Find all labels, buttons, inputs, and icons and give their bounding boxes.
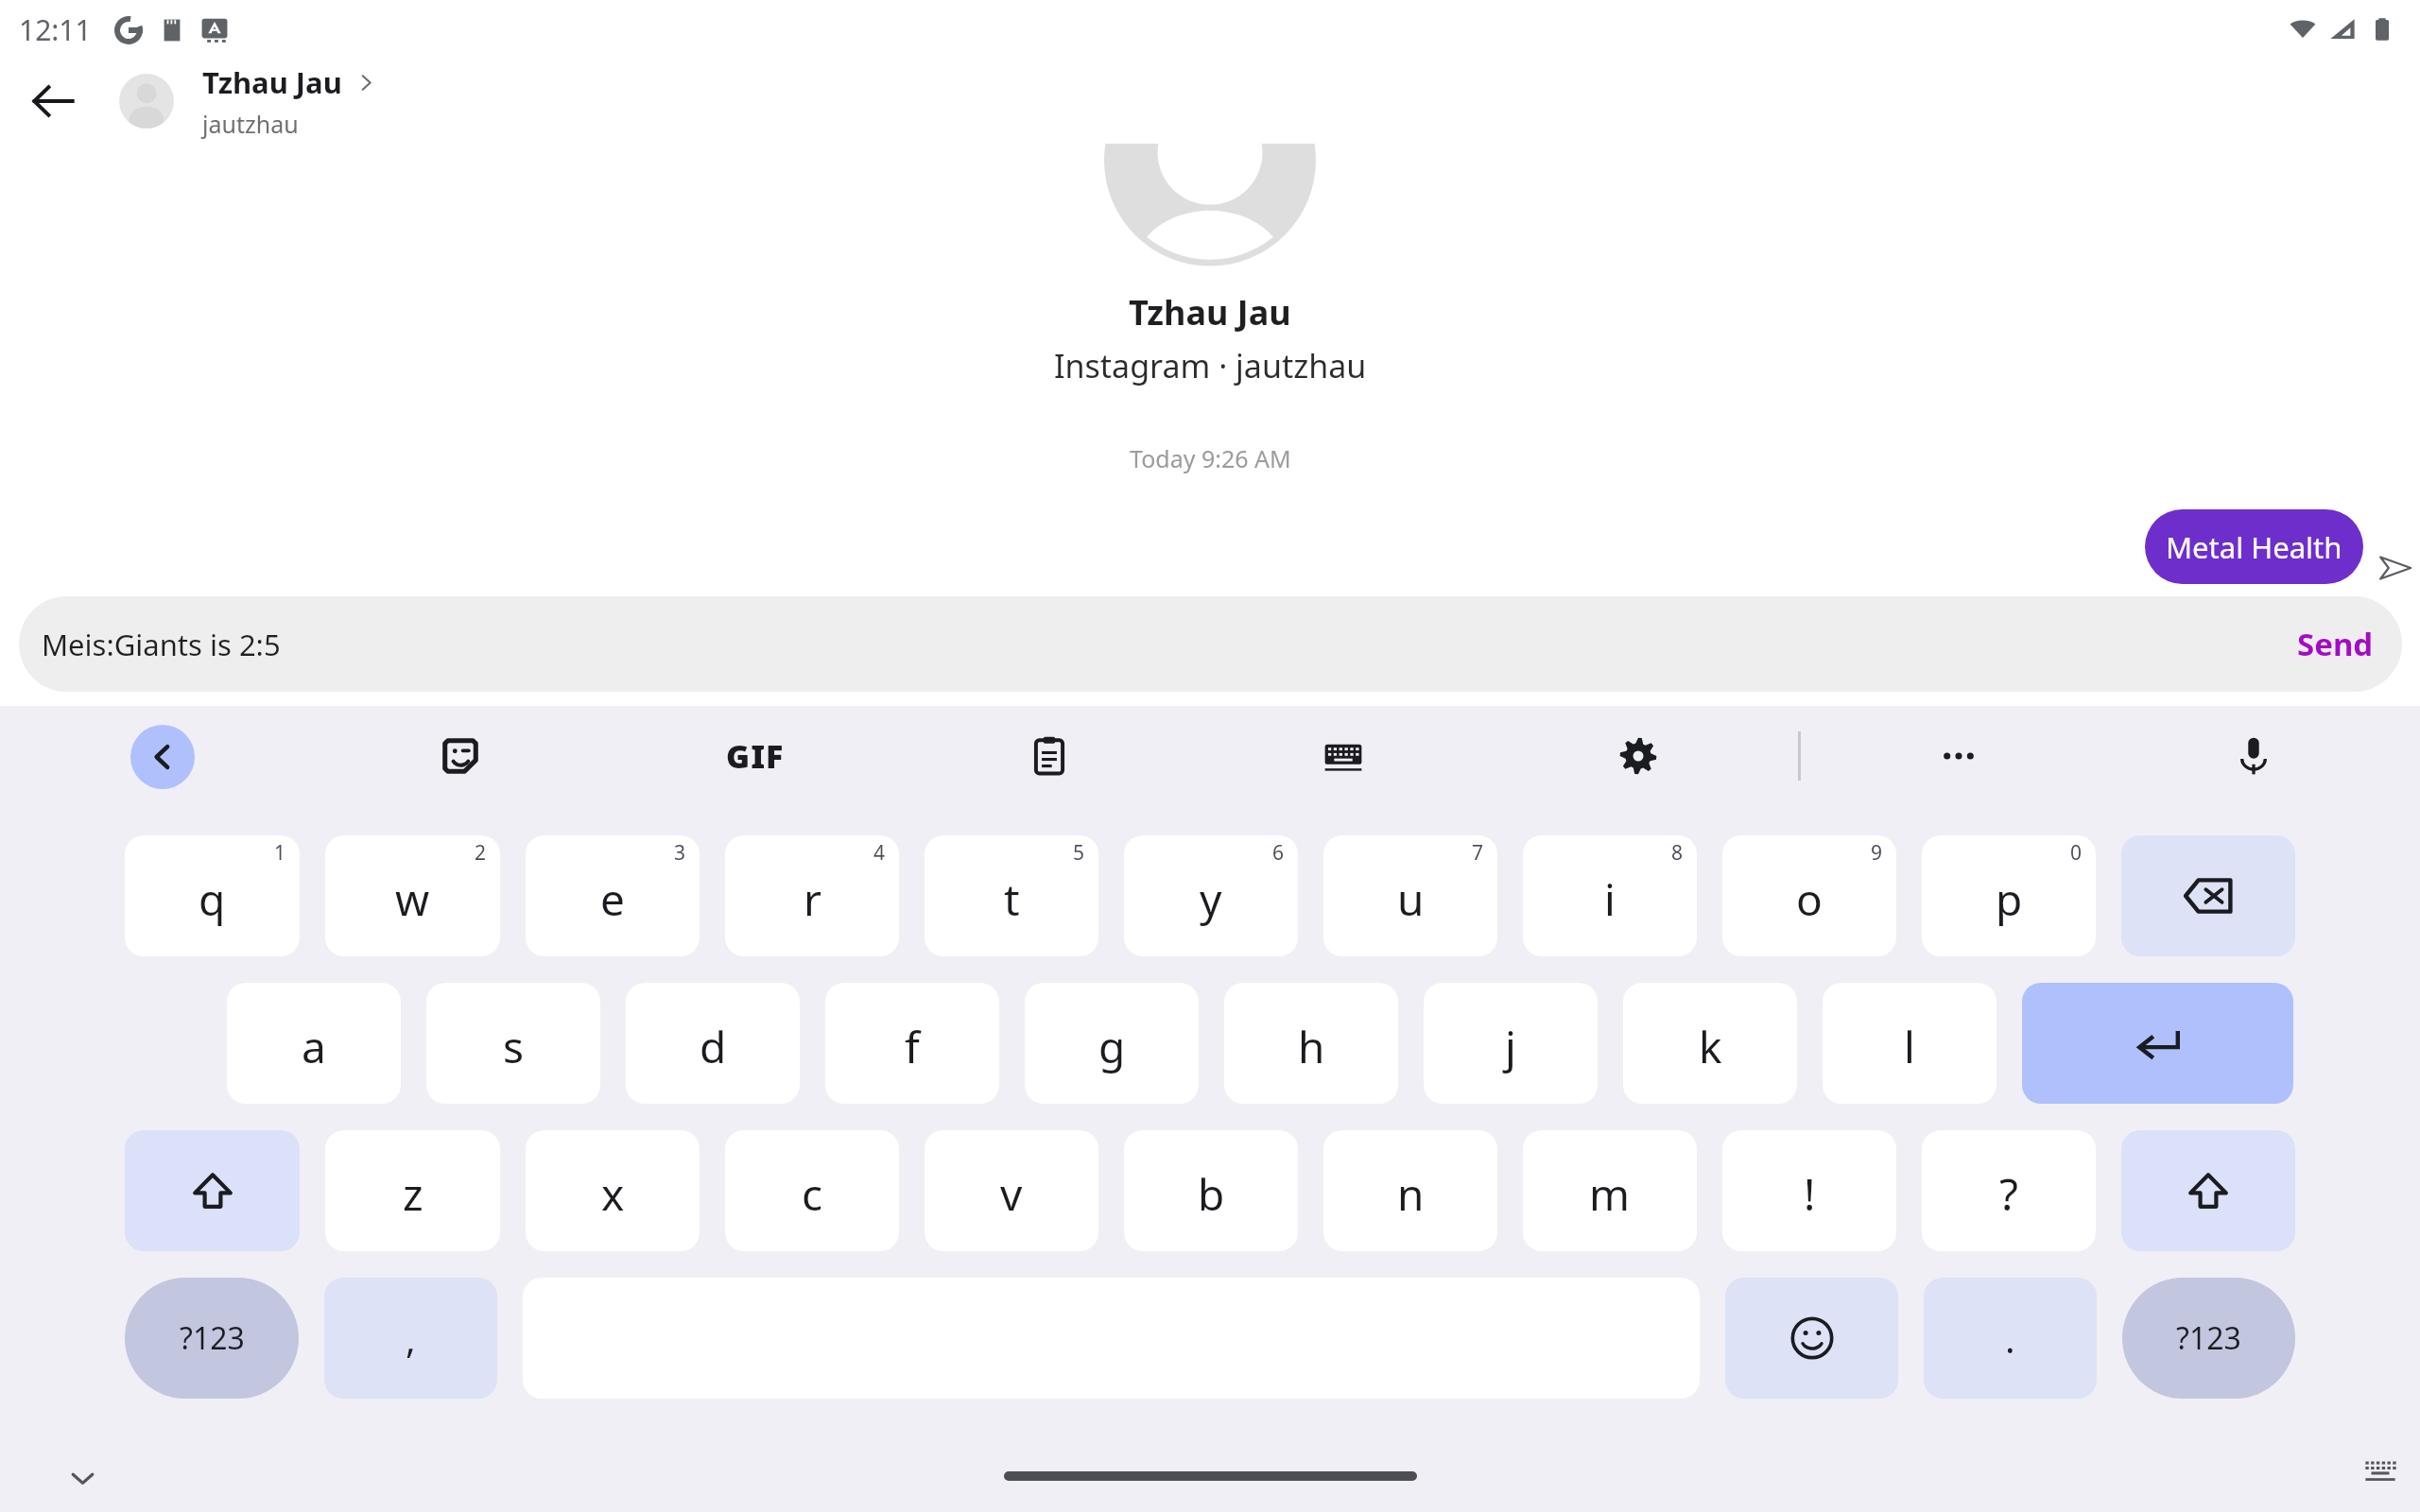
staticText: r [804, 869, 821, 929]
button[interactable]: Enter [2022, 983, 2293, 1104]
button[interactable]: ! [1722, 1130, 1896, 1251]
button[interactable]: Keyboard layout [1296, 709, 1391, 803]
staticText: Today 9:26 AM [1130, 442, 1291, 474]
staticText: 3 [674, 839, 686, 867]
button[interactable]: Voice input [2206, 709, 2301, 803]
button[interactable]: g [1025, 983, 1199, 1104]
button[interactable]: j [1424, 983, 1598, 1104]
staticText: k [1699, 1017, 1722, 1076]
staticText: Tzhau Jau [202, 62, 342, 102]
staticText: y [1200, 869, 1222, 929]
staticText: 4 [873, 839, 886, 867]
staticText: Instagram · jautzhau [1054, 344, 1367, 387]
button[interactable]: Switch keyboard [2350, 1438, 2411, 1499]
button[interactable]: t [925, 835, 1098, 956]
button[interactable]: , [324, 1278, 497, 1399]
staticText: 2 [475, 839, 487, 867]
staticText: j [1505, 1017, 1516, 1076]
staticText: Metal Health [2166, 527, 2342, 567]
staticText: 8 [1671, 839, 1684, 867]
staticText: a [302, 1017, 326, 1076]
staticText: t [1004, 869, 1020, 929]
staticText: o [1796, 869, 1823, 929]
button[interactable]: Hide keyboard [52, 1448, 112, 1508]
button[interactable]: ?123 [2122, 1278, 2295, 1399]
button[interactable]: Shift [125, 1130, 300, 1251]
staticText: 7 [1472, 839, 1484, 867]
staticText: n [1397, 1164, 1425, 1224]
staticText: p [1996, 869, 2023, 929]
staticText: ? [1999, 1164, 2018, 1224]
button[interactable]: d [626, 983, 800, 1104]
button[interactable]: Collapse toolbar [130, 725, 195, 789]
button[interactable]: Clipboard [1002, 709, 1097, 803]
staticText: 9 [1871, 839, 1883, 867]
button[interactable]: i [1523, 835, 1697, 956]
button[interactable]: Shift [2121, 1130, 2295, 1251]
staticText: b [1198, 1164, 1225, 1224]
button[interactable]: More options [1911, 709, 2006, 803]
button[interactable]: . [1924, 1278, 2097, 1399]
button[interactable]: ? [1922, 1130, 2096, 1251]
staticText: l [1904, 1017, 1915, 1076]
staticText: w [395, 869, 430, 929]
staticText: x [601, 1164, 625, 1224]
staticText: ?123 [180, 1317, 245, 1359]
button[interactable]: y [1124, 835, 1298, 956]
staticText: 6 [1272, 839, 1285, 867]
button[interactable]: Emoji [1725, 1278, 1898, 1399]
staticText: ! [1804, 1164, 1816, 1224]
staticText: Tzhau Jau [1129, 289, 1291, 335]
staticText: f [905, 1017, 920, 1076]
button[interactable]: Backspace [2121, 835, 2295, 956]
button[interactable]: c [725, 1130, 899, 1251]
button[interactable]: ?123 [125, 1278, 299, 1399]
staticText: c [802, 1164, 823, 1224]
staticText: ?123 [2176, 1317, 2241, 1359]
staticText: jautzhau [202, 108, 299, 140]
staticText: u [1397, 869, 1425, 929]
button[interactable]: u [1323, 835, 1497, 956]
staticText: h [1298, 1017, 1325, 1076]
button[interactable]: v [925, 1130, 1098, 1251]
button[interactable]: m [1523, 1130, 1697, 1251]
button[interactable]: n [1323, 1130, 1497, 1251]
button[interactable]: a [227, 983, 401, 1104]
staticText: , [406, 1313, 416, 1364]
button[interactable]: q [125, 835, 300, 956]
button[interactable]: h [1224, 983, 1398, 1104]
button[interactable]: Back [11, 60, 95, 143]
staticText: m [1589, 1164, 1631, 1224]
button[interactable]: w [325, 835, 500, 956]
staticText: 12:11 [19, 10, 92, 49]
button[interactable]: Send [2269, 606, 2402, 682]
button[interactable]: s [426, 983, 600, 1104]
staticText: g [1098, 1017, 1126, 1076]
button[interactable]: f [825, 983, 999, 1104]
button[interactable]: x [526, 1130, 700, 1251]
button[interactable]: Meis:Giants is 2:5 [19, 596, 2402, 692]
staticText: s [503, 1017, 525, 1076]
staticText: 1 [274, 839, 286, 867]
button[interactable]: k [1623, 983, 1797, 1104]
button[interactable]: Stickers [413, 709, 508, 803]
button[interactable]: Tzhau Jau [119, 62, 375, 140]
staticText: 0 [2070, 839, 2083, 867]
button[interactable]: GIF [708, 709, 803, 803]
staticText: d [700, 1017, 727, 1076]
button[interactable]: Metal Health [2145, 509, 2363, 584]
button[interactable]: o [1722, 835, 1896, 956]
button[interactable]: p [1922, 835, 2096, 956]
button[interactable]: e [526, 835, 700, 956]
staticText: GIF [726, 734, 785, 778]
button[interactable]: l [1823, 983, 1996, 1104]
staticText: i [1604, 869, 1616, 929]
button[interactable]: r [725, 835, 899, 956]
button[interactable]: Settings [1591, 709, 1685, 803]
staticText: Meis:Giants is 2:5 [42, 625, 281, 664]
staticText: z [403, 1164, 423, 1224]
button[interactable]: z [325, 1130, 500, 1251]
button[interactable]: b [1124, 1130, 1298, 1251]
staticText: e [600, 869, 625, 929]
